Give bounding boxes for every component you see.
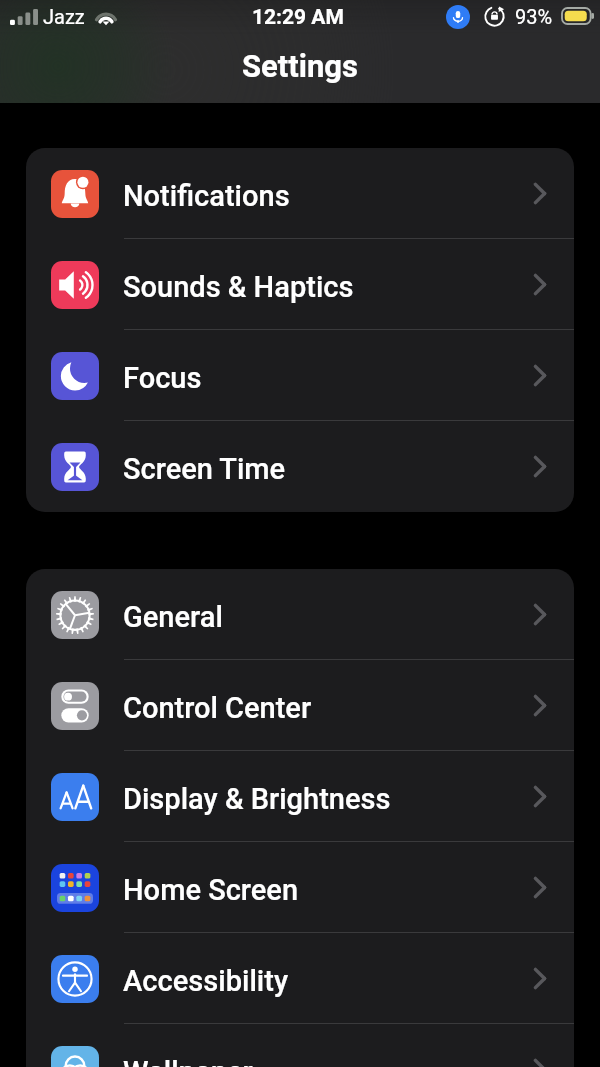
button[interactable]: Screen Time xyxy=(26,421,574,512)
staticText: Control Center xyxy=(123,691,312,725)
staticText: Sounds & Haptics xyxy=(123,270,354,304)
staticText: 93% xyxy=(515,5,553,28)
staticText: Wallpaper xyxy=(123,1055,253,1067)
staticText: Screen Time xyxy=(123,452,286,486)
button[interactable]: Notifications xyxy=(26,148,574,239)
button[interactable]: Focus xyxy=(26,330,574,421)
button[interactable]: Control Center xyxy=(26,660,574,751)
button[interactable]: Accessibility xyxy=(26,933,574,1024)
staticText: General xyxy=(123,600,223,634)
button[interactable]: Home Screen xyxy=(26,842,574,933)
staticText: Accessibility xyxy=(123,964,288,998)
staticText: Display & Brightness xyxy=(123,782,391,816)
staticText: Home Screen xyxy=(123,873,299,907)
button[interactable]: Sounds & Haptics xyxy=(26,239,574,330)
button[interactable]: Display & Brightness xyxy=(26,751,574,842)
staticText: Jazz xyxy=(43,5,85,28)
button[interactable]: Wallpaper xyxy=(26,1024,574,1067)
staticText: Focus xyxy=(123,361,202,395)
button[interactable]: General xyxy=(26,569,574,660)
staticText: 12:29 AM xyxy=(252,5,344,30)
staticText: Settings xyxy=(242,48,359,84)
staticText: Notifications xyxy=(123,179,290,213)
